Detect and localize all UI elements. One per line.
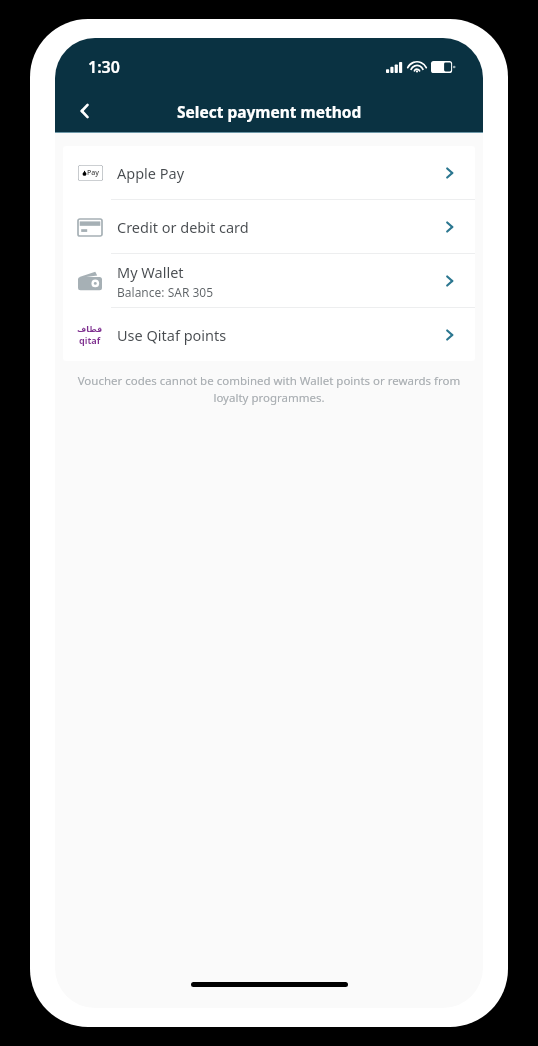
staticText: Pay: [87, 168, 99, 178]
staticText: قطاف: [77, 325, 103, 334]
staticText: Voucher codes cannot be combined with Wa…: [77, 373, 461, 406]
staticText: Balance: SAR 305: [117, 284, 214, 300]
button[interactable]: Credit or debit card: [63, 200, 475, 253]
staticText: Credit or debit card: [117, 217, 249, 237]
staticText: My Wallet: [117, 262, 184, 282]
button[interactable]: قطاف: [63, 308, 475, 361]
staticText: Use Qitaf points: [117, 325, 227, 345]
staticText: 1:30: [88, 56, 120, 78]
button[interactable]: My Wallet: [63, 254, 475, 307]
button[interactable]: Pay: [63, 146, 475, 199]
staticText: qitaf: [79, 334, 101, 346]
staticText: Select payment method: [177, 101, 362, 122]
button[interactable]: Back: [65, 91, 105, 131]
staticText: Apple Pay: [117, 163, 185, 183]
